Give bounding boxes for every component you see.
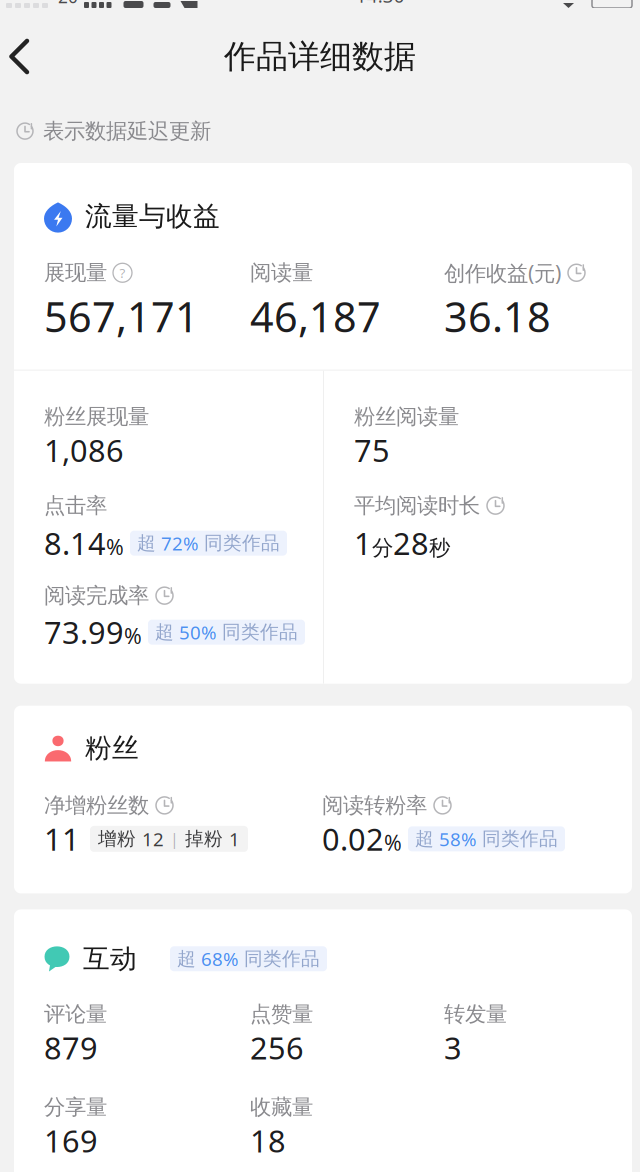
staticText: 18 (250, 1120, 286, 1161)
staticText: 72% (161, 531, 199, 555)
staticText: 20 (58, 0, 78, 8)
staticText: 同类作品 (204, 532, 280, 555)
staticText: 分享量 (44, 1094, 107, 1120)
button[interactable]: 返回 (0, 20, 51, 92)
staticText: 58% (439, 826, 477, 851)
staticText: 68% (201, 946, 239, 971)
staticText: | (170, 828, 179, 849)
staticText: 互动 (83, 942, 137, 975)
staticText: 点击率 (44, 492, 107, 519)
staticText: 36.18 (444, 289, 551, 344)
staticText: 同类作品 (482, 827, 558, 850)
staticText: % (106, 533, 124, 561)
staticText: 46,187 (250, 289, 381, 344)
staticText: 同类作品 (222, 621, 298, 644)
staticText: 展现量 (44, 260, 107, 286)
staticText: 粉丝 (85, 732, 139, 764)
staticText: 增粉 (98, 827, 136, 850)
staticText: 256 (250, 1027, 304, 1068)
staticText: 8.14 (44, 523, 106, 563)
staticText: 75 (354, 430, 390, 470)
staticText: 同类作品 (244, 947, 320, 970)
staticText: 567,171 (44, 289, 199, 344)
staticText: 879 (44, 1027, 98, 1068)
staticText: 平均阅读时长 (354, 492, 480, 519)
staticText: 秒 (429, 535, 450, 561)
staticText: 分 (372, 535, 393, 561)
staticText: % (384, 828, 402, 857)
staticText: 收藏量 (250, 1094, 313, 1120)
staticText: 1,086 (44, 430, 124, 470)
staticText: 粉丝展现量 (44, 403, 149, 430)
staticText: 超 (177, 947, 196, 970)
staticText: 14:30 (356, 0, 405, 8)
staticText: 28 (393, 523, 429, 563)
staticText: 阅读完成率 (44, 582, 149, 609)
staticText: 1 (354, 523, 372, 563)
staticText: 超 (137, 532, 156, 555)
staticText: ? (119, 264, 125, 282)
staticText: 阅读量 (250, 260, 313, 286)
staticText: 50% (179, 620, 217, 644)
staticText: 创作收益(元) (444, 259, 561, 287)
staticText: 评论量 (44, 1001, 107, 1027)
staticText: 表示数据延迟更新 (43, 118, 211, 144)
staticText: 转发量 (444, 1001, 507, 1027)
staticText: 3 (444, 1027, 462, 1068)
staticText: % (124, 622, 142, 650)
staticText: 73.99 (44, 612, 124, 652)
staticText: 12 (142, 826, 164, 851)
staticText: 阅读转粉率 (322, 792, 427, 818)
staticText: 点赞量 (250, 1001, 313, 1027)
staticText: 169 (44, 1120, 98, 1161)
staticText: 1 (229, 826, 240, 851)
staticText: 超 (155, 621, 174, 644)
staticText: 0.02 (322, 818, 384, 859)
staticText: 11 (44, 818, 80, 859)
staticText: 净增粉丝数 (44, 792, 149, 818)
staticText: 掉粉 (185, 827, 223, 850)
staticText: 作品详细数据 (224, 37, 416, 76)
staticText: 流量与收益 (85, 200, 220, 233)
staticText: 超 (415, 827, 434, 850)
staticText: 粉丝阅读量 (354, 403, 459, 430)
